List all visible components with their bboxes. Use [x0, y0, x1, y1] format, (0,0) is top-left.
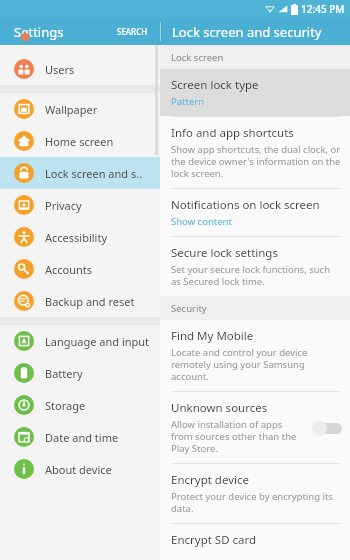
staticText: Wallpaper [45, 102, 98, 117]
button[interactable]: Lock screen and security [161, 18, 350, 45]
staticText: 12:45 PM [301, 2, 345, 16]
staticText: Allow installation of apps from sources … [171, 418, 306, 455]
staticText: Privacy [45, 198, 82, 213]
staticText: Backup and reset [45, 294, 135, 309]
staticText: Find My Mobile [171, 328, 254, 344]
staticText: Set your secure lock functions, such as … [171, 263, 342, 288]
button[interactable]: About device [0, 453, 160, 485]
button[interactable]: Unknown sources toggle [312, 420, 342, 436]
staticText: Language and input [45, 334, 150, 349]
staticText: Unknown sources [171, 400, 268, 416]
button[interactable]: Home screen [0, 125, 160, 157]
staticText: Pattern [171, 95, 205, 108]
staticText: Info and app shortcuts [171, 125, 294, 141]
button[interactable]: Language and input [0, 325, 160, 357]
staticText: Storage [45, 398, 86, 413]
staticText: About device [45, 462, 112, 477]
staticText: Users [45, 62, 75, 77]
staticText: Security [171, 302, 207, 315]
button[interactable]: Secure lock settings [160, 237, 350, 296]
staticText: SEARCH [117, 26, 148, 37]
staticText: Lock screen and security [172, 23, 322, 41]
button[interactable]: Info and app shortcuts [160, 117, 350, 188]
staticText: Locate and control your device remotely … [171, 346, 342, 383]
button[interactable]: Find My Mobile [160, 320, 350, 391]
button[interactable]: Screen lock type [160, 69, 350, 116]
staticText: Secure lock settings [171, 245, 278, 261]
staticText: Date and time [45, 430, 119, 445]
button[interactable]: Settings [0, 18, 160, 45]
staticText: Screen lock type [171, 77, 259, 93]
button[interactable]: Encrypt SD card [160, 524, 350, 560]
staticText: Show content [171, 215, 232, 228]
button[interactable]: Backup and reset [0, 285, 160, 317]
button[interactable]: Encrypt device [160, 464, 350, 523]
button[interactable]: Accessibility [0, 221, 160, 253]
staticText: Accounts [45, 262, 93, 277]
button[interactable]: Unknown sources [160, 392, 350, 463]
button[interactable] [0, 45, 160, 53]
staticText: Battery [45, 366, 83, 381]
staticText: Encrypt SD card [171, 532, 257, 548]
staticText: Lock screen [171, 51, 224, 64]
button[interactable]: Date and time [0, 421, 160, 453]
staticText: Encrypt device [171, 472, 249, 488]
staticText: Lock screen and s.. [45, 166, 143, 181]
button[interactable]: Wallpaper [0, 93, 160, 125]
button[interactable]: Notifications on lock screen [160, 189, 350, 236]
button[interactable]: Storage [0, 389, 160, 421]
staticText: Show app shortcuts, the dual clock, or t… [171, 143, 342, 180]
staticText: Home screen [45, 134, 114, 149]
button[interactable]: Battery [0, 357, 160, 389]
button[interactable]: Lock screen and s.. [0, 157, 160, 189]
staticText: Settings [14, 23, 64, 41]
staticText: Accessibility [45, 230, 108, 245]
button[interactable]: Accounts [0, 253, 160, 285]
staticText: Protect your device by encrypting its da… [171, 490, 342, 515]
button[interactable]: SEARCH [113, 22, 152, 41]
staticText: Notifications on lock screen [171, 197, 320, 213]
button[interactable]: Privacy [0, 189, 160, 221]
button[interactable]: Users [0, 53, 160, 85]
